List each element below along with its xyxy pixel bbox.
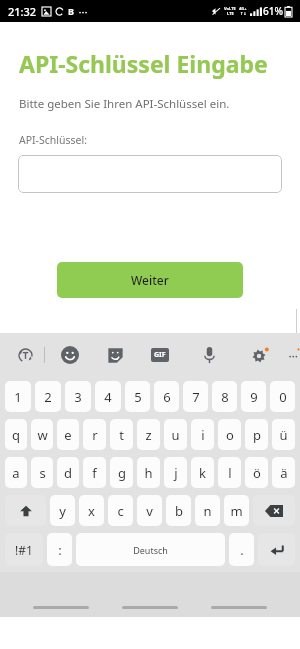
staticText: p xyxy=(253,426,261,444)
staticText: g xyxy=(118,464,126,482)
button[interactable]: x xyxy=(79,495,104,526)
button[interactable]: Stickers xyxy=(103,343,127,367)
button[interactable]: Back xyxy=(211,606,267,609)
button[interactable]: j xyxy=(164,457,187,488)
button[interactable]: p xyxy=(245,419,268,450)
staticText: n xyxy=(203,502,212,520)
button[interactable]: Backspace xyxy=(253,495,295,526)
staticText: c xyxy=(117,502,124,520)
staticText: Bitte geben Sie Ihren API-Schlüssel ein. xyxy=(19,96,230,112)
button[interactable]: Voice input xyxy=(197,343,221,367)
button[interactable]: h xyxy=(137,457,160,488)
staticText: 2 xyxy=(44,388,52,406)
button[interactable]: d xyxy=(57,457,79,488)
staticText: 3 xyxy=(74,388,82,406)
staticText: 61% xyxy=(263,4,283,18)
staticText: API-Schlüssel: xyxy=(19,133,87,147)
button[interactable]: 7 xyxy=(183,381,208,412)
staticText: a xyxy=(12,464,20,482)
staticText: x xyxy=(88,502,95,520)
staticText: w xyxy=(37,426,48,444)
button[interactable]: 8 xyxy=(212,381,237,412)
button[interactable]: : xyxy=(47,533,72,566)
button[interactable]: 5 xyxy=(125,381,150,412)
button[interactable]: t xyxy=(110,419,133,450)
button[interactable]: Enter xyxy=(258,533,295,566)
button[interactable]: f xyxy=(83,457,106,488)
button[interactable]: 2 xyxy=(35,381,61,412)
button[interactable]: 9 xyxy=(241,381,266,412)
button[interactable]: s xyxy=(31,457,53,488)
button[interactable]: l xyxy=(218,457,241,488)
button[interactable]: z xyxy=(137,419,160,450)
button[interactable]: 0 xyxy=(270,381,295,412)
staticText: v xyxy=(146,502,153,520)
button[interactable]: 6 xyxy=(154,381,179,412)
button[interactable]: ä xyxy=(272,457,295,488)
button[interactable]: g xyxy=(110,457,133,488)
button[interactable]: e xyxy=(57,419,79,450)
staticText: : xyxy=(58,541,62,559)
staticText: b xyxy=(175,502,183,520)
staticText: VoLTE xyxy=(224,6,236,11)
button[interactable]: More options xyxy=(288,343,300,367)
button[interactable]: r xyxy=(83,419,106,450)
button[interactable]: 3 xyxy=(65,381,91,412)
staticText: 8 xyxy=(221,388,229,406)
button[interactable]: Emoji xyxy=(58,343,82,367)
staticText: t xyxy=(119,426,124,444)
button[interactable]: Settings xyxy=(248,343,272,367)
staticText: 9 xyxy=(250,388,258,406)
button[interactable]: b xyxy=(166,495,191,526)
staticText: LTE xyxy=(227,11,234,16)
staticText: s xyxy=(39,464,46,482)
staticText: !#1 xyxy=(15,542,33,558)
staticText: 21:32 xyxy=(8,4,37,19)
staticText: ö xyxy=(253,464,261,482)
staticText: . xyxy=(240,541,244,559)
button[interactable]: a xyxy=(5,457,27,488)
button[interactable]: i xyxy=(191,419,214,450)
staticText: API-Schlüssel Eingabe xyxy=(19,48,268,79)
button[interactable]: q xyxy=(5,419,27,450)
button[interactable]: c xyxy=(108,495,133,526)
button[interactable]: GIF xyxy=(148,343,172,367)
staticText: q xyxy=(12,426,20,444)
button[interactable]: Deutsch xyxy=(76,533,225,566)
button[interactable]: ö xyxy=(245,457,268,488)
button[interactable]: 4 xyxy=(95,381,121,412)
button[interactable]: m xyxy=(224,495,249,526)
staticText: z xyxy=(145,426,152,444)
staticText: h xyxy=(144,464,153,482)
button[interactable] xyxy=(18,155,282,193)
button[interactable]: 1 xyxy=(5,381,31,412)
staticText: ä xyxy=(280,464,288,482)
staticText: d xyxy=(64,464,72,482)
staticText: r xyxy=(92,426,98,444)
button[interactable]: w xyxy=(31,419,53,450)
staticText: Weiter xyxy=(131,272,169,288)
button[interactable]: n xyxy=(195,495,220,526)
staticText: y xyxy=(59,502,66,520)
staticText: i xyxy=(201,426,205,444)
button[interactable]: v xyxy=(137,495,162,526)
button[interactable]: Recents xyxy=(33,606,89,609)
button[interactable]: Weiter xyxy=(57,262,243,298)
button[interactable]: Home xyxy=(122,606,178,609)
staticText: Deutsch xyxy=(133,544,168,556)
staticText: GIF xyxy=(154,350,166,360)
button[interactable]: o xyxy=(218,419,241,450)
staticText: ü xyxy=(279,426,288,444)
staticText: 7 xyxy=(192,388,200,406)
button[interactable]: Translate xyxy=(14,344,37,367)
button[interactable]: !#1 xyxy=(5,533,43,566)
button[interactable]: y xyxy=(50,495,75,526)
button[interactable]: k xyxy=(191,457,214,488)
staticText: B xyxy=(68,5,74,17)
button[interactable]: Shift xyxy=(5,495,46,526)
button[interactable]: . xyxy=(229,533,254,566)
button[interactable]: ü xyxy=(272,419,295,450)
button[interactable]: u xyxy=(164,419,187,450)
staticText: e xyxy=(64,426,72,444)
staticText: 6 xyxy=(163,388,171,406)
